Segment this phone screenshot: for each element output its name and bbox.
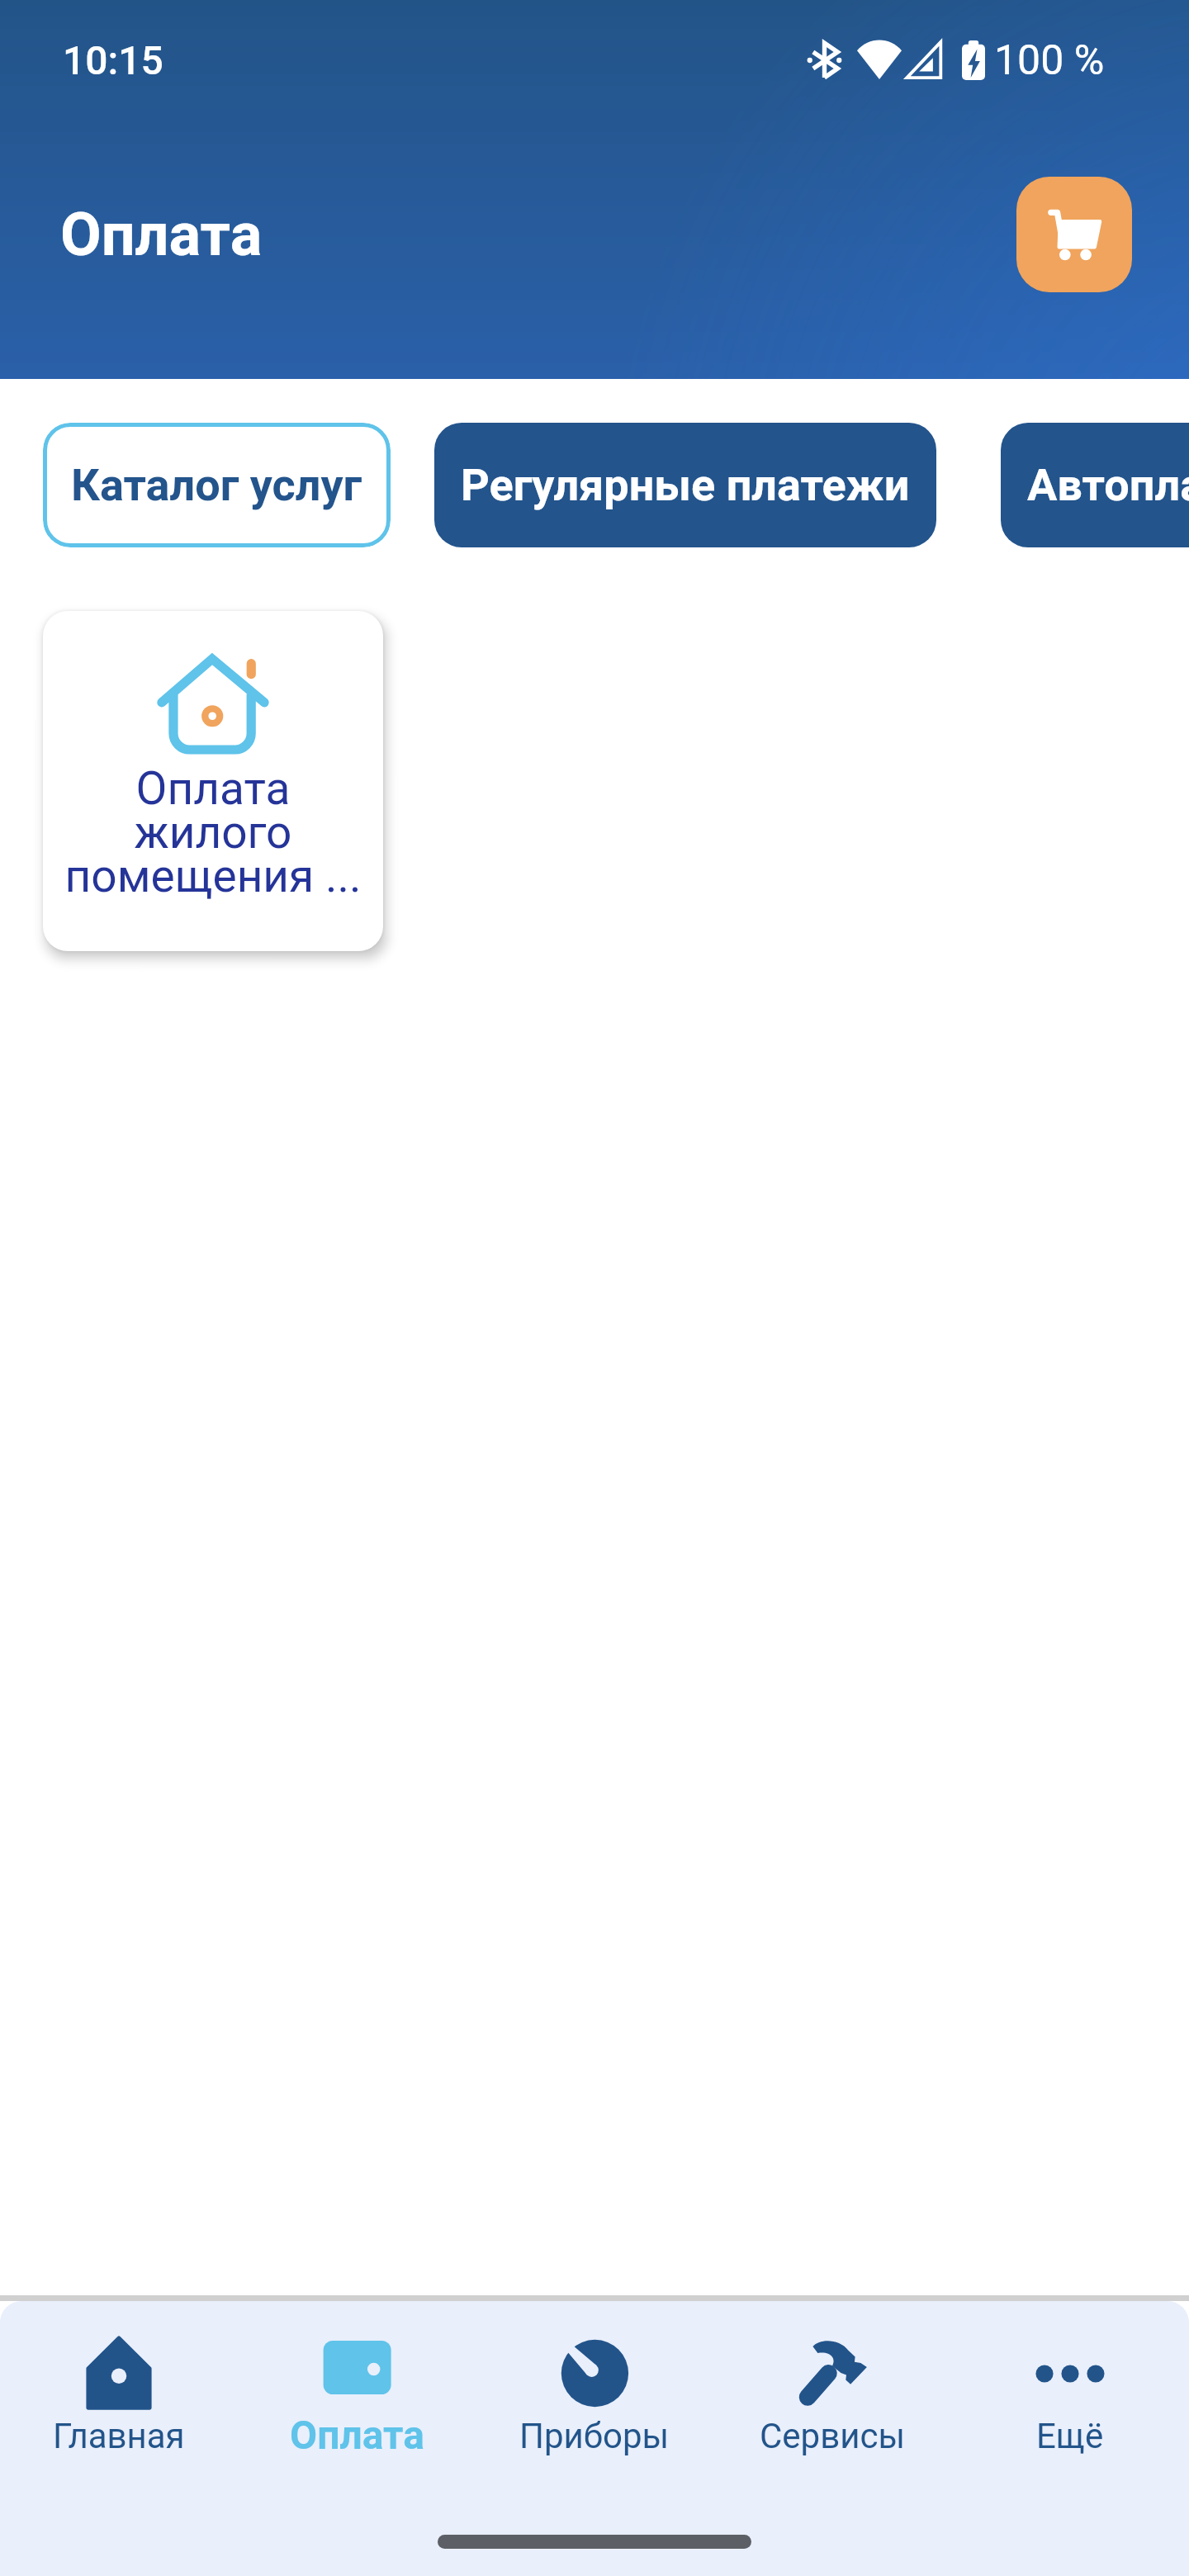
staticText: Приборы xyxy=(519,2416,670,2456)
button[interactable]: Главная xyxy=(0,2301,238,2466)
staticText: Автоплатежи xyxy=(1027,459,1189,511)
staticText: Оплата xyxy=(60,200,263,269)
staticText: Оплата xyxy=(290,2412,424,2458)
staticText: Главная xyxy=(53,2416,185,2456)
button[interactable]: Автоплатежи xyxy=(1001,423,1189,547)
staticText: Ещё xyxy=(1036,2416,1104,2456)
button[interactable]: Сервисы xyxy=(713,2301,951,2466)
button[interactable]: Приборы xyxy=(476,2301,713,2466)
button[interactable]: Ещё xyxy=(951,2301,1189,2466)
button[interactable]: Корзина xyxy=(1016,177,1132,292)
button[interactable]: Каталог услуг xyxy=(43,423,391,547)
staticText: Сервисы xyxy=(760,2416,906,2456)
button[interactable]: Регулярные платежи xyxy=(434,423,936,547)
button[interactable]: Оплата жилого помещения ... xyxy=(43,611,383,951)
staticText: Оплата жилого помещения ... xyxy=(62,762,364,902)
staticText: 100 % xyxy=(994,36,1105,79)
staticText: 10:15 xyxy=(63,37,163,83)
button[interactable]: Оплата xyxy=(238,2301,476,2466)
staticText: Регулярные платежи xyxy=(461,459,910,511)
staticText: Каталог услуг xyxy=(71,459,362,511)
